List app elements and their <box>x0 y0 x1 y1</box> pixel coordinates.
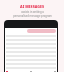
staticText: assists in writing a <box>21 10 44 14</box>
staticText: AI MESSAGES <box>20 4 44 9</box>
staticText: personalised message program <box>13 14 52 18</box>
